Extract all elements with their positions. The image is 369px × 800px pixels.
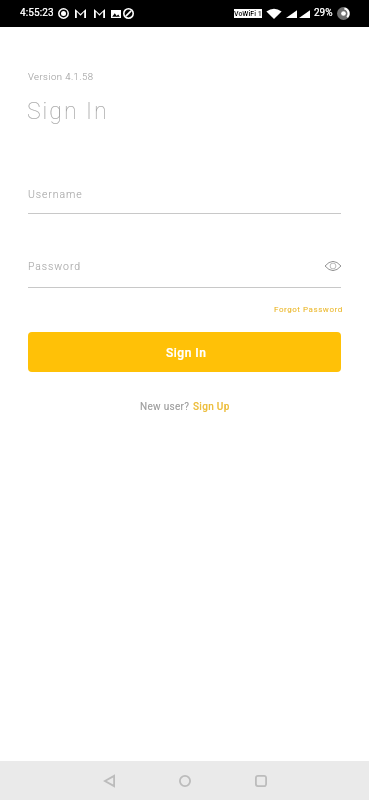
staticText: Version 4.1.58 [28, 71, 94, 82]
staticText: Sign In [166, 346, 207, 360]
staticText: Username [28, 188, 83, 200]
button[interactable]: Home [163, 761, 207, 800]
staticText: Sign Up [193, 401, 230, 413]
staticText: 29% [314, 7, 333, 19]
staticText: 4:55:23 [20, 7, 54, 19]
staticText: Sign In [27, 98, 109, 125]
button[interactable]: Back [87, 761, 131, 800]
staticText: Password [28, 260, 81, 272]
button[interactable]: Forgot Password [274, 305, 343, 314]
staticText: New user? [140, 401, 193, 413]
button[interactable]: Sign In [28, 332, 341, 372]
button[interactable]: Recents [239, 761, 283, 800]
staticText: VoWiFi 1 [234, 10, 262, 18]
staticText: Forgot Password [274, 305, 343, 314]
button[interactable]: Sign Up [193, 401, 230, 413]
button[interactable]: Show password [323, 256, 343, 276]
